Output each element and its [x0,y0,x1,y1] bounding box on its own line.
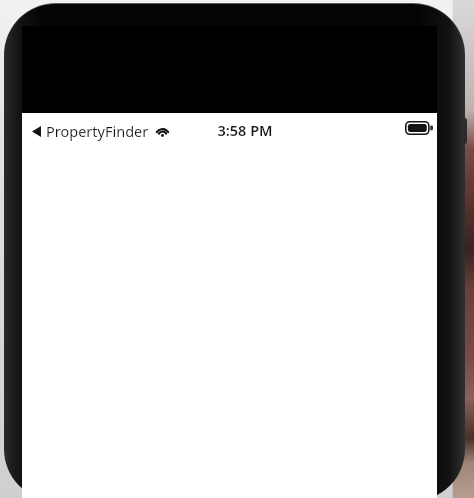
button[interactable]: Back to PropertyFinder [30,119,170,143]
staticText: 3:58 PM [205,120,285,140]
staticText: PropertyFinder [46,121,149,141]
button[interactable]: Battery full [405,121,433,135]
